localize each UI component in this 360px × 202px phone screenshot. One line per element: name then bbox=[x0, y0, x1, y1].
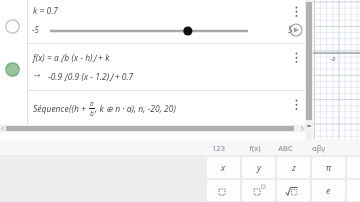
button[interactable]: z bbox=[277, 157, 310, 178]
button[interactable]: e bbox=[312, 180, 345, 201]
staticText: x bbox=[221, 162, 226, 174]
staticText: , k ⊕ n · a), n, −20, 20) bbox=[95, 103, 176, 115]
button[interactable]: Square bbox=[207, 180, 240, 201]
button[interactable]: More options bbox=[290, 50, 303, 65]
staticText: n bbox=[90, 99, 94, 108]
button[interactable] bbox=[48, 24, 300, 38]
button[interactable]: More options bbox=[290, 97, 303, 112]
button[interactable]: Power bbox=[242, 180, 275, 201]
button[interactable]: π bbox=[312, 157, 345, 178]
button[interactable]: Play animation bbox=[289, 23, 303, 37]
staticText: y bbox=[257, 162, 261, 174]
staticText: f(x) bbox=[249, 143, 261, 153]
staticText: f(x) = a ⌊b (x − h)⌋ + k bbox=[33, 52, 110, 64]
button[interactable]: y bbox=[242, 157, 275, 178]
button[interactable]: αβγ bbox=[303, 140, 333, 155]
button[interactable]: More options bbox=[290, 4, 303, 19]
button[interactable]: Square root bbox=[277, 180, 310, 201]
button[interactable]: Show or hide function f bbox=[0, 44, 305, 90]
staticText: ((h + bbox=[69, 103, 89, 115]
staticText: ABC bbox=[278, 143, 293, 153]
staticText: 123 bbox=[212, 143, 225, 153]
button[interactable]: f(x) bbox=[240, 140, 270, 155]
button[interactable]: x bbox=[207, 157, 240, 178]
button[interactable]: ABC bbox=[270, 140, 300, 155]
staticText: k = 0.7 bbox=[33, 5, 59, 17]
button[interactable]: Séquence bbox=[0, 91, 305, 125]
button[interactable]: Show or hide object k bbox=[0, 0, 305, 43]
button[interactable]: Show or hide function f bbox=[5, 62, 20, 77]
staticText: e bbox=[326, 185, 331, 197]
staticText: −0.9 ⌊0.9 (x − 1.2)⌋ + 0.7 bbox=[48, 71, 134, 83]
staticText: -5 bbox=[32, 24, 39, 35]
button[interactable]: Graphics view bbox=[313, 0, 360, 140]
staticText: -8 bbox=[330, 55, 336, 63]
staticText: z bbox=[292, 162, 296, 174]
staticText: αβγ bbox=[312, 143, 325, 153]
staticText: b bbox=[90, 109, 94, 118]
staticText: Séquence bbox=[33, 103, 69, 115]
staticText: → bbox=[33, 71, 40, 80]
staticText: π bbox=[326, 162, 331, 174]
button[interactable]: 123 bbox=[203, 140, 233, 155]
button[interactable]: Show or hide object k bbox=[5, 19, 20, 34]
staticText: 5 bbox=[288, 24, 293, 35]
